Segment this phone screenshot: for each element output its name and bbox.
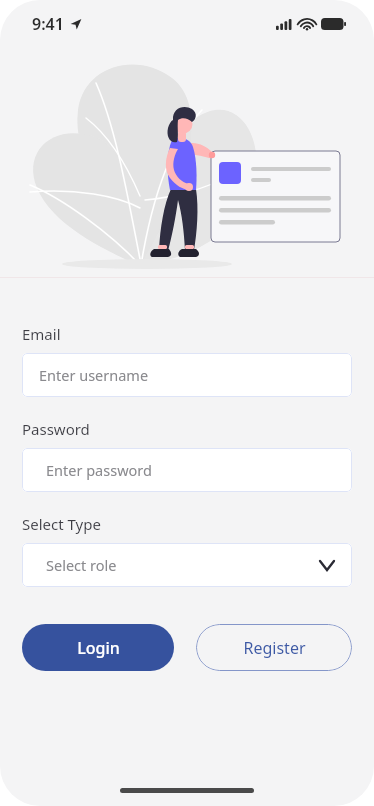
button[interactable]: Enter password (22, 448, 352, 492)
button[interactable]: Login (22, 624, 174, 671)
staticText: 9:41 (32, 13, 64, 35)
staticText: Select role (46, 555, 117, 575)
staticText: Select Type (22, 514, 101, 534)
staticText: Register (243, 637, 306, 659)
staticText: Password (22, 419, 90, 439)
button[interactable]: Enter username (22, 353, 352, 397)
staticText: Enter password (46, 460, 152, 480)
staticText: Enter username (39, 365, 149, 385)
button[interactable]: Select role dropdown (22, 543, 352, 587)
staticText: Email (22, 324, 61, 344)
staticText: Login (77, 637, 120, 659)
button[interactable]: Register (196, 624, 352, 671)
